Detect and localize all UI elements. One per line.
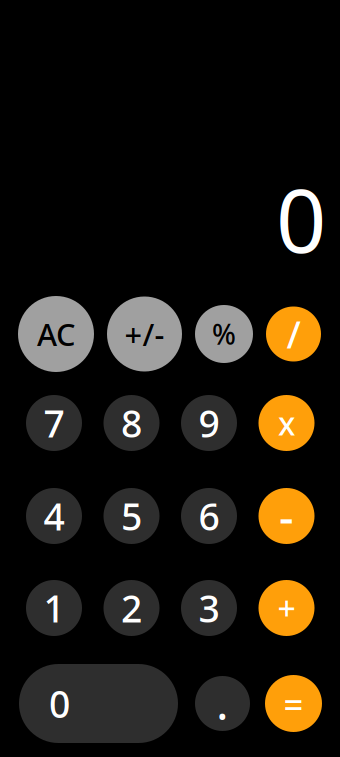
staticText: -: [279, 486, 294, 546]
staticText: %: [212, 315, 236, 353]
staticText: 9: [198, 398, 219, 448]
button[interactable]: 5: [103, 488, 159, 544]
button[interactable]: 7: [26, 395, 82, 451]
staticText: 8: [121, 398, 142, 448]
button[interactable]: Percent: [195, 305, 253, 363]
button[interactable]: Divide: [266, 306, 321, 361]
button[interactable]: Add: [258, 580, 314, 636]
button[interactable]: 6: [181, 488, 237, 544]
button[interactable]: Equals: [265, 675, 322, 732]
staticText: 4: [43, 491, 64, 541]
button[interactable]: 8: [103, 395, 159, 451]
button[interactable]: All clear: [18, 296, 94, 372]
button[interactable]: 1: [26, 580, 82, 636]
button[interactable]: Decimal point: [195, 676, 250, 731]
staticText: 6: [198, 491, 219, 541]
button[interactable]: Plus minus: [107, 296, 182, 371]
staticText: +/-: [124, 314, 164, 354]
staticText: 2: [121, 583, 142, 633]
button[interactable]: 2: [103, 580, 159, 636]
button[interactable]: 3: [181, 580, 237, 636]
staticText: 1: [43, 583, 64, 633]
button[interactable]: 0: [19, 664, 178, 743]
staticText: x: [278, 402, 295, 444]
staticText: 3: [198, 583, 219, 633]
button[interactable]: 4: [26, 488, 82, 544]
staticText: =: [283, 680, 303, 726]
staticText: AC: [37, 314, 75, 354]
button[interactable]: 9: [181, 395, 237, 451]
staticText: 5: [121, 491, 142, 541]
button[interactable]: Subtract: [258, 488, 314, 544]
staticText: +: [277, 587, 295, 629]
staticText: 0: [276, 160, 326, 277]
button[interactable]: Multiply: [258, 395, 314, 451]
staticText: 7: [43, 398, 64, 448]
staticText: .: [216, 675, 228, 732]
staticText: 0: [49, 679, 70, 728]
staticText: /: [286, 309, 300, 359]
